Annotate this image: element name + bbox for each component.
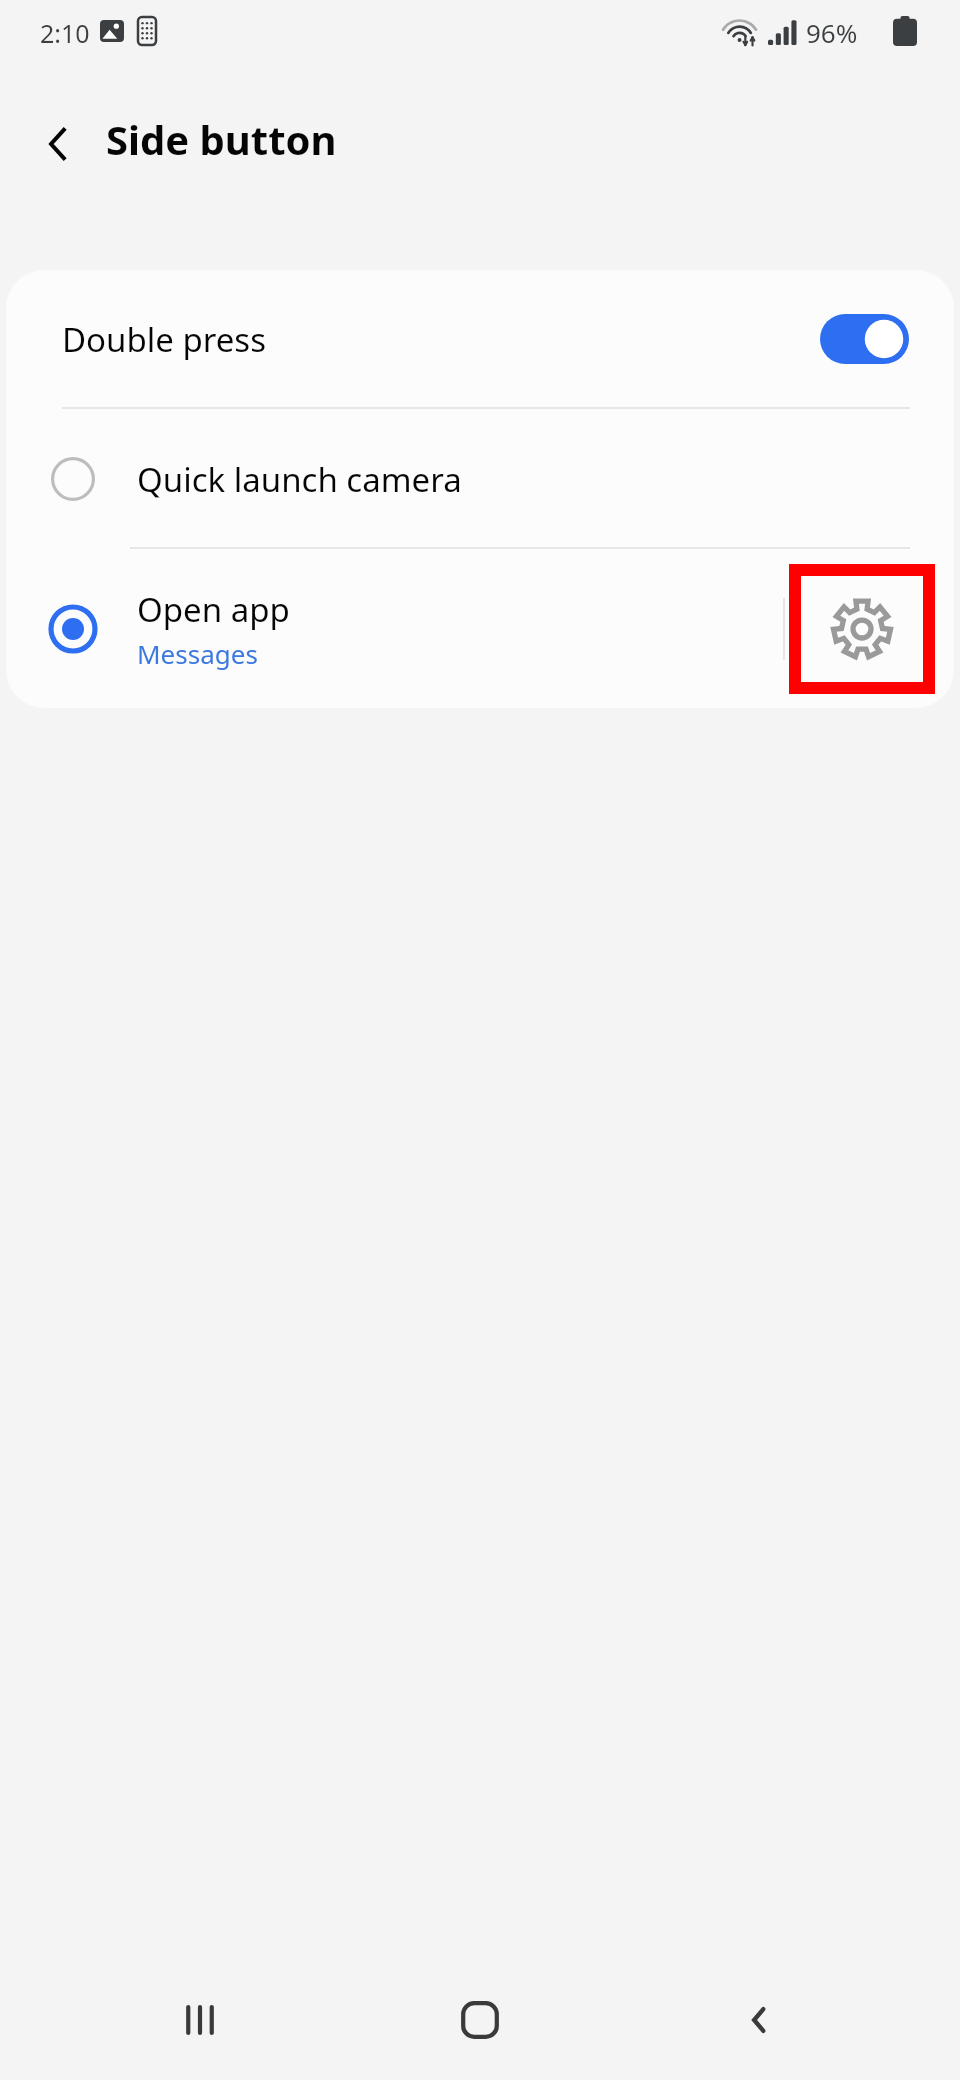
staticText: 2:10 — [40, 16, 90, 50]
staticText: Quick launch camera — [137, 457, 462, 502]
button[interactable]: App settings — [801, 576, 923, 682]
staticText: Open app — [137, 587, 290, 632]
staticText: Messages — [137, 636, 258, 671]
staticText: Double press — [62, 317, 266, 362]
button[interactable]: Back — [28, 112, 92, 176]
staticText: Side button — [106, 112, 337, 166]
button[interactable]: Quick launch camera — [6, 410, 954, 548]
staticText: 96% — [806, 15, 858, 50]
button[interactable]: Back — [720, 1980, 800, 2060]
button[interactable] — [6, 550, 954, 708]
button[interactable]: Double press toggle — [820, 314, 909, 364]
button[interactable]: Double press — [6, 270, 954, 408]
button[interactable]: Home — [440, 1980, 520, 2060]
button[interactable]: Recents — [160, 1980, 240, 2060]
